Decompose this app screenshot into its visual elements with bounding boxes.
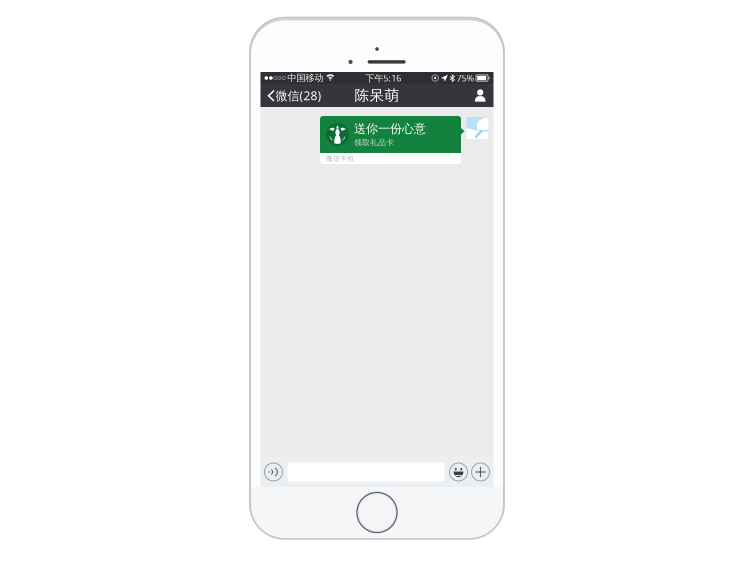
button[interactable]: Home [354, 489, 400, 535]
button[interactable]: Voice message [264, 463, 282, 481]
button[interactable]: Emoji [449, 463, 467, 481]
staticText: 送你一份心意 [354, 121, 426, 136]
button[interactable]: Sender avatar [466, 117, 488, 139]
button[interactable]: 微信(28) [260, 82, 327, 108]
staticText: 微信卡包 [326, 154, 354, 163]
button[interactable]: Contact info [468, 84, 493, 107]
button[interactable]: 送你一份心意 [320, 116, 461, 164]
staticText: 下午5:16 [365, 72, 401, 84]
staticText: 中国移动 [287, 72, 323, 84]
staticText: 陈呆萌 [354, 86, 399, 104]
staticText: 75% [456, 72, 474, 84]
staticText: 微信(28) [275, 87, 321, 103]
staticText: 领取礼品卡 [354, 138, 394, 147]
button[interactable]: More [471, 463, 489, 481]
